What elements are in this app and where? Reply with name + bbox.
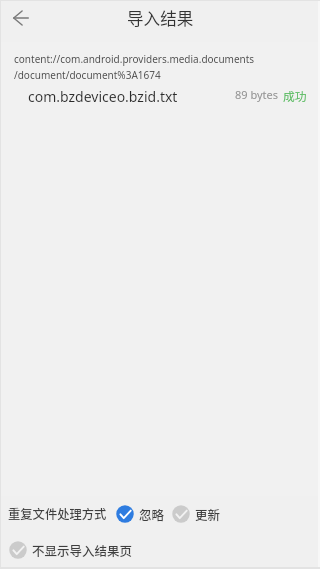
button[interactable]: 忽略	[116, 505, 165, 523]
staticText: 成功	[283, 87, 307, 104]
staticText: 更新	[195, 505, 221, 523]
staticText: 导入结果	[127, 6, 194, 30]
button[interactable]: 不显示导入结果页	[9, 541, 133, 559]
staticText: 不显示导入结果页	[32, 541, 133, 559]
staticText: com.bzdeviceo.bzid.txt	[28, 87, 178, 106]
staticText: 89 bytes	[235, 87, 279, 102]
staticText: content://com.android.providers.media.do…	[14, 52, 255, 66]
button[interactable]: Back	[0, 0, 42, 39]
staticText: 忽略	[139, 505, 165, 523]
staticText: /document/document%3A1674	[14, 68, 161, 82]
button[interactable]: com.bzdeviceo.bzid.txt	[0, 85, 320, 107]
button[interactable]: 更新	[172, 505, 221, 523]
staticText: 重复文件处理方式	[8, 505, 107, 523]
